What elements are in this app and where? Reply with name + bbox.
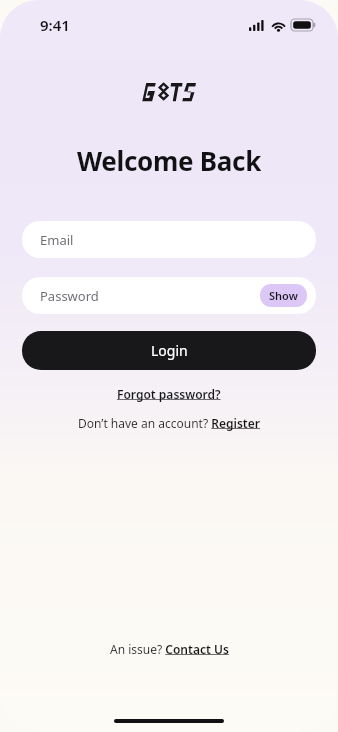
staticText: Password [40, 287, 99, 305]
other: G8TS logo [142, 80, 196, 102]
button[interactable]: Email [22, 221, 316, 258]
staticText: Login [151, 341, 188, 360]
button[interactable]: Don’t have an account? Register [72, 413, 266, 433]
staticText: An issue? Contact Us [110, 641, 229, 657]
staticText: Forgot password? [117, 386, 221, 402]
button[interactable]: Password [22, 277, 316, 314]
staticText: Welcome Back [77, 143, 261, 178]
staticText: Show [269, 288, 298, 303]
staticText: Don’t have an account? Register [78, 415, 260, 431]
button[interactable]: Forgot password? [111, 384, 227, 404]
button[interactable]: Show [260, 284, 307, 307]
button[interactable]: Login [22, 331, 316, 370]
staticText: Email [40, 231, 74, 249]
button[interactable]: An issue? Contact Us [104, 638, 235, 660]
staticText: 9:41 [40, 15, 70, 35]
